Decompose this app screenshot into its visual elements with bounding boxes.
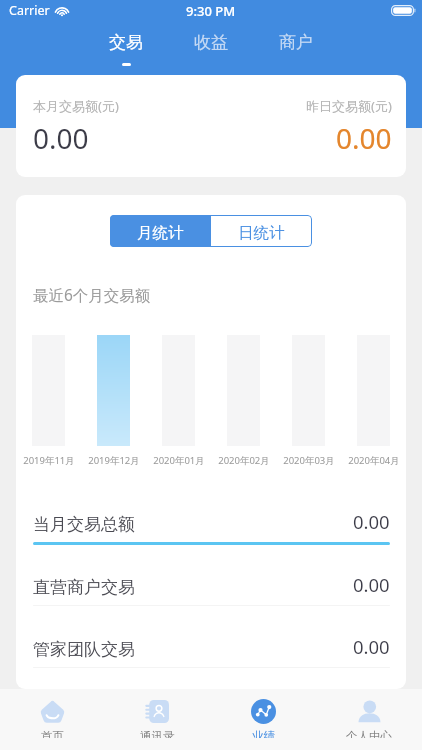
staticText: 2020年01月 (153, 454, 205, 467)
staticText: 2020年03月 (283, 454, 335, 467)
staticText: 个人中心 (346, 729, 392, 738)
button[interactable]: 首页 (0, 689, 105, 750)
staticText: 0.00 (353, 634, 390, 659)
staticText: 最近6个月交易额 (33, 284, 151, 305)
button[interactable]: 业绩 (210, 689, 316, 750)
staticText: 2019年11月 (23, 454, 75, 467)
staticText: Carrier (9, 2, 50, 19)
staticText: 本月交易额(元) (33, 97, 119, 115)
other: 个人中心 (357, 699, 382, 724)
button[interactable]: 管家团队交易 (16, 631, 406, 689)
staticText: 0.00 (353, 509, 390, 534)
button[interactable]: 直营商户交易 (16, 569, 406, 631)
button[interactable]: 个人中心 (316, 689, 422, 750)
button[interactable]: 月统计 (110, 215, 211, 247)
staticText: 0.00 (336, 119, 392, 157)
staticText: 9:30 PM (186, 2, 236, 20)
staticText: 管家团队交易 (33, 639, 353, 660)
staticText: 首页 (41, 729, 64, 738)
staticText: 直营商户交易 (33, 577, 353, 598)
button[interactable]: 通讯录 (105, 689, 210, 750)
staticText: 交易 (109, 32, 143, 53)
button[interactable]: 交易 (101, 29, 151, 69)
button[interactable]: 收益 (186, 29, 236, 69)
other: 业绩 (251, 699, 276, 724)
button[interactable]: 日统计 (211, 215, 312, 247)
staticText: 当月交易总额 (33, 514, 353, 535)
staticText: 昨日交易额(元) (306, 97, 392, 115)
staticText: 收益 (194, 32, 228, 53)
staticText: 月统计 (137, 223, 184, 243)
staticText: 0.00 (353, 572, 390, 597)
staticText: 0.00 (33, 119, 89, 157)
button[interactable]: 商户 (271, 29, 321, 69)
other: 通讯录 (145, 699, 170, 724)
staticText: 2019年12月 (88, 454, 140, 467)
staticText: 业绩 (252, 729, 275, 738)
other: 首页 (40, 699, 65, 724)
staticText: 2020年04月 (348, 454, 400, 467)
staticText: 日统计 (238, 223, 285, 243)
staticText: 2020年02月 (218, 454, 270, 467)
button[interactable]: 当月交易总额 (16, 506, 406, 569)
staticText: 通讯录 (140, 729, 175, 738)
staticText: 商户 (279, 32, 313, 53)
